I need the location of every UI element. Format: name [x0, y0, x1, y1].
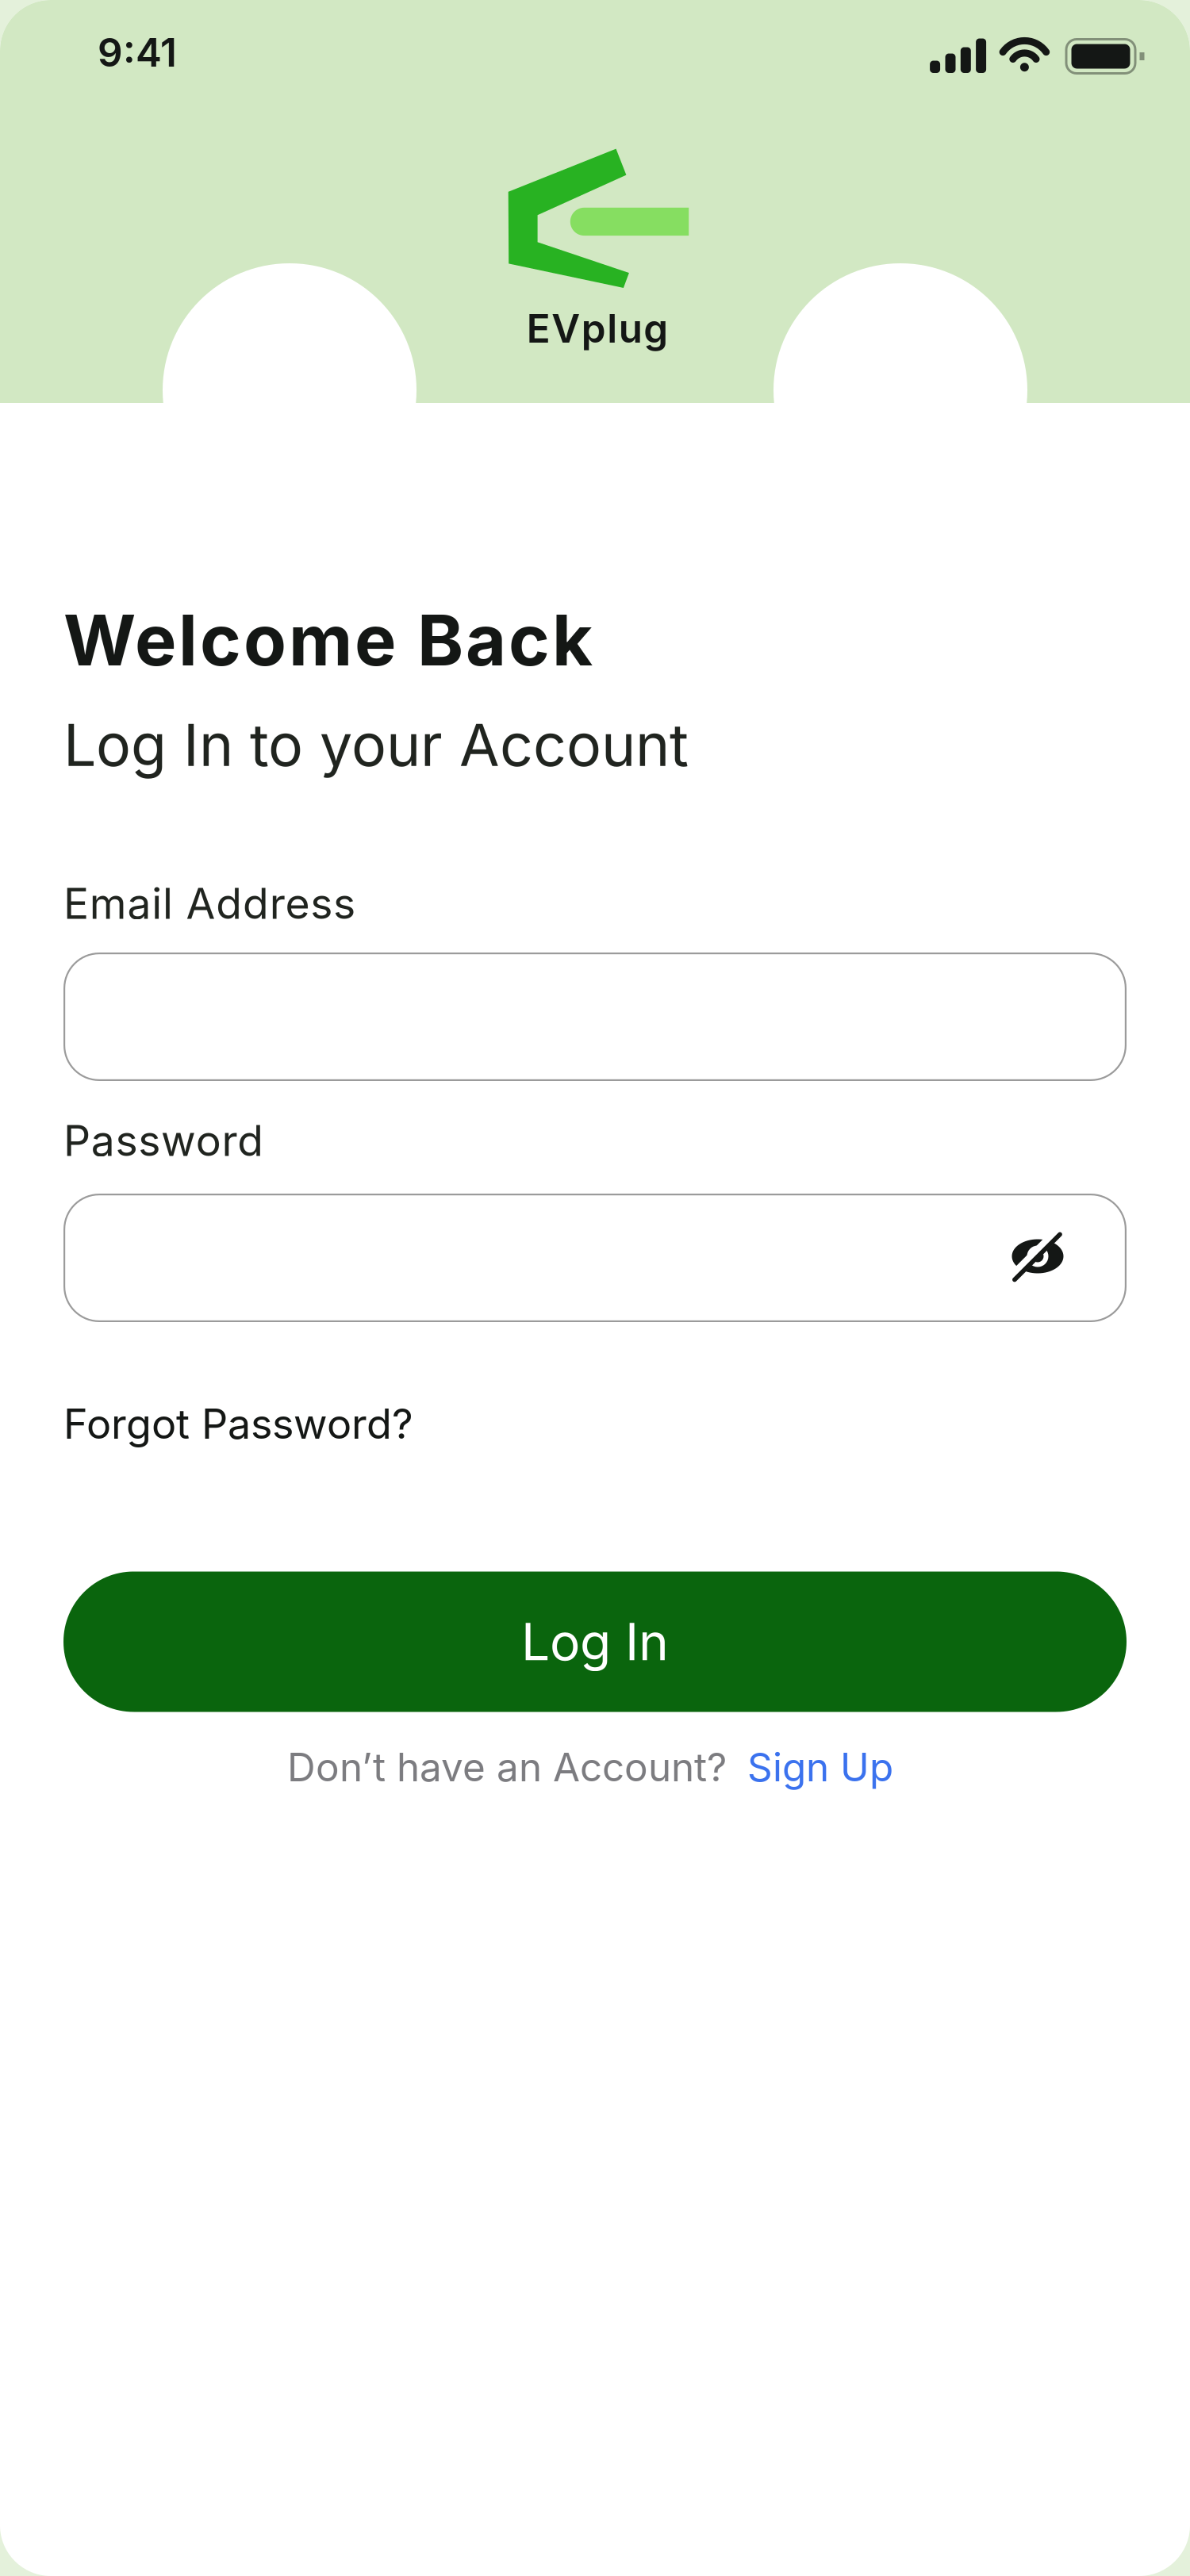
staticText: Email Address	[63, 878, 355, 928]
button[interactable]: Email Address	[63, 953, 1127, 1081]
staticText: 9:41	[98, 29, 177, 75]
button[interactable]: Log In	[63, 1572, 1127, 1712]
button[interactable]: Password	[63, 1194, 1127, 1322]
staticText: Forgot Password?	[63, 1399, 413, 1448]
staticText: Log In to your Account	[63, 710, 689, 779]
staticText: Log In	[521, 1612, 669, 1672]
staticText: Welcome Back	[63, 599, 593, 681]
button[interactable]: Forgot Password?	[63, 1399, 444, 1448]
staticText: Sign Up	[747, 1744, 893, 1790]
staticText: EVplug	[527, 305, 668, 351]
button[interactable]: Show password	[1002, 1221, 1073, 1292]
staticText: Don’t have an Account?	[287, 1744, 727, 1790]
staticText: Password	[63, 1115, 264, 1165]
button[interactable]: Sign Up	[747, 1744, 893, 1790]
